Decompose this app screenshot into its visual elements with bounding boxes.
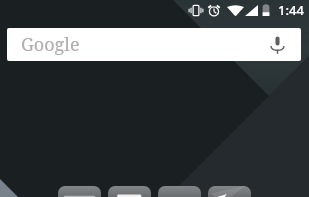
button[interactable]: Google xyxy=(7,28,301,61)
button[interactable]: Camera xyxy=(158,186,201,197)
button[interactable]: Voice search xyxy=(270,36,285,54)
staticText: 1:44 xyxy=(278,1,304,19)
staticText: Google xyxy=(21,32,80,57)
button[interactable]: Messaging xyxy=(108,186,151,197)
button[interactable]: Maps xyxy=(208,186,251,197)
button[interactable]: Phone xyxy=(58,186,101,197)
